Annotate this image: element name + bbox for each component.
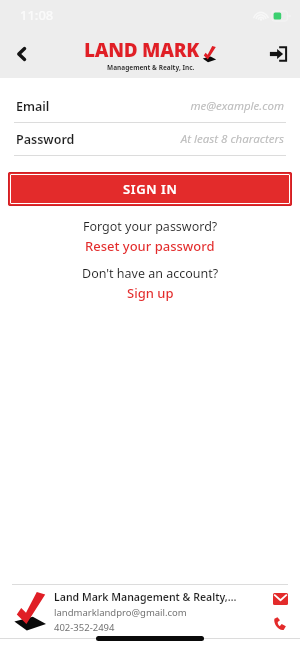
staticText: 402-352-2494 [54, 621, 115, 634]
button[interactable]: Back [0, 32, 44, 76]
button[interactable]: Reset your password [85, 237, 215, 255]
staticText: 11:08 [20, 6, 54, 24]
staticText: Reset your password [85, 237, 215, 255]
button[interactable]: Email [270, 589, 290, 609]
staticText: landmarklandpro@gmail.com [54, 606, 187, 619]
staticText: Email [16, 98, 50, 115]
button[interactable]: Call [270, 614, 290, 634]
staticText: Forgot your password? [83, 218, 218, 235]
staticText: Password [16, 131, 75, 148]
button[interactable]: Sign in [256, 32, 300, 76]
button[interactable]: Sign up [127, 284, 174, 302]
button[interactable]: SIGN IN [10, 174, 290, 204]
staticText: Sign up [127, 284, 174, 302]
staticText: me@example.com [190, 98, 284, 114]
button[interactable]: Email [0, 90, 300, 123]
staticText: LAND MARK [84, 37, 199, 63]
button[interactable]: Password [0, 123, 300, 156]
staticText: SIGN IN [123, 180, 178, 198]
staticText: Don't have an account? [82, 265, 219, 282]
staticText: Management & Realty, Inc. [107, 63, 195, 72]
staticText: Land Mark Management & Realty,… [54, 590, 237, 604]
staticText: At least 8 characters [180, 131, 284, 147]
